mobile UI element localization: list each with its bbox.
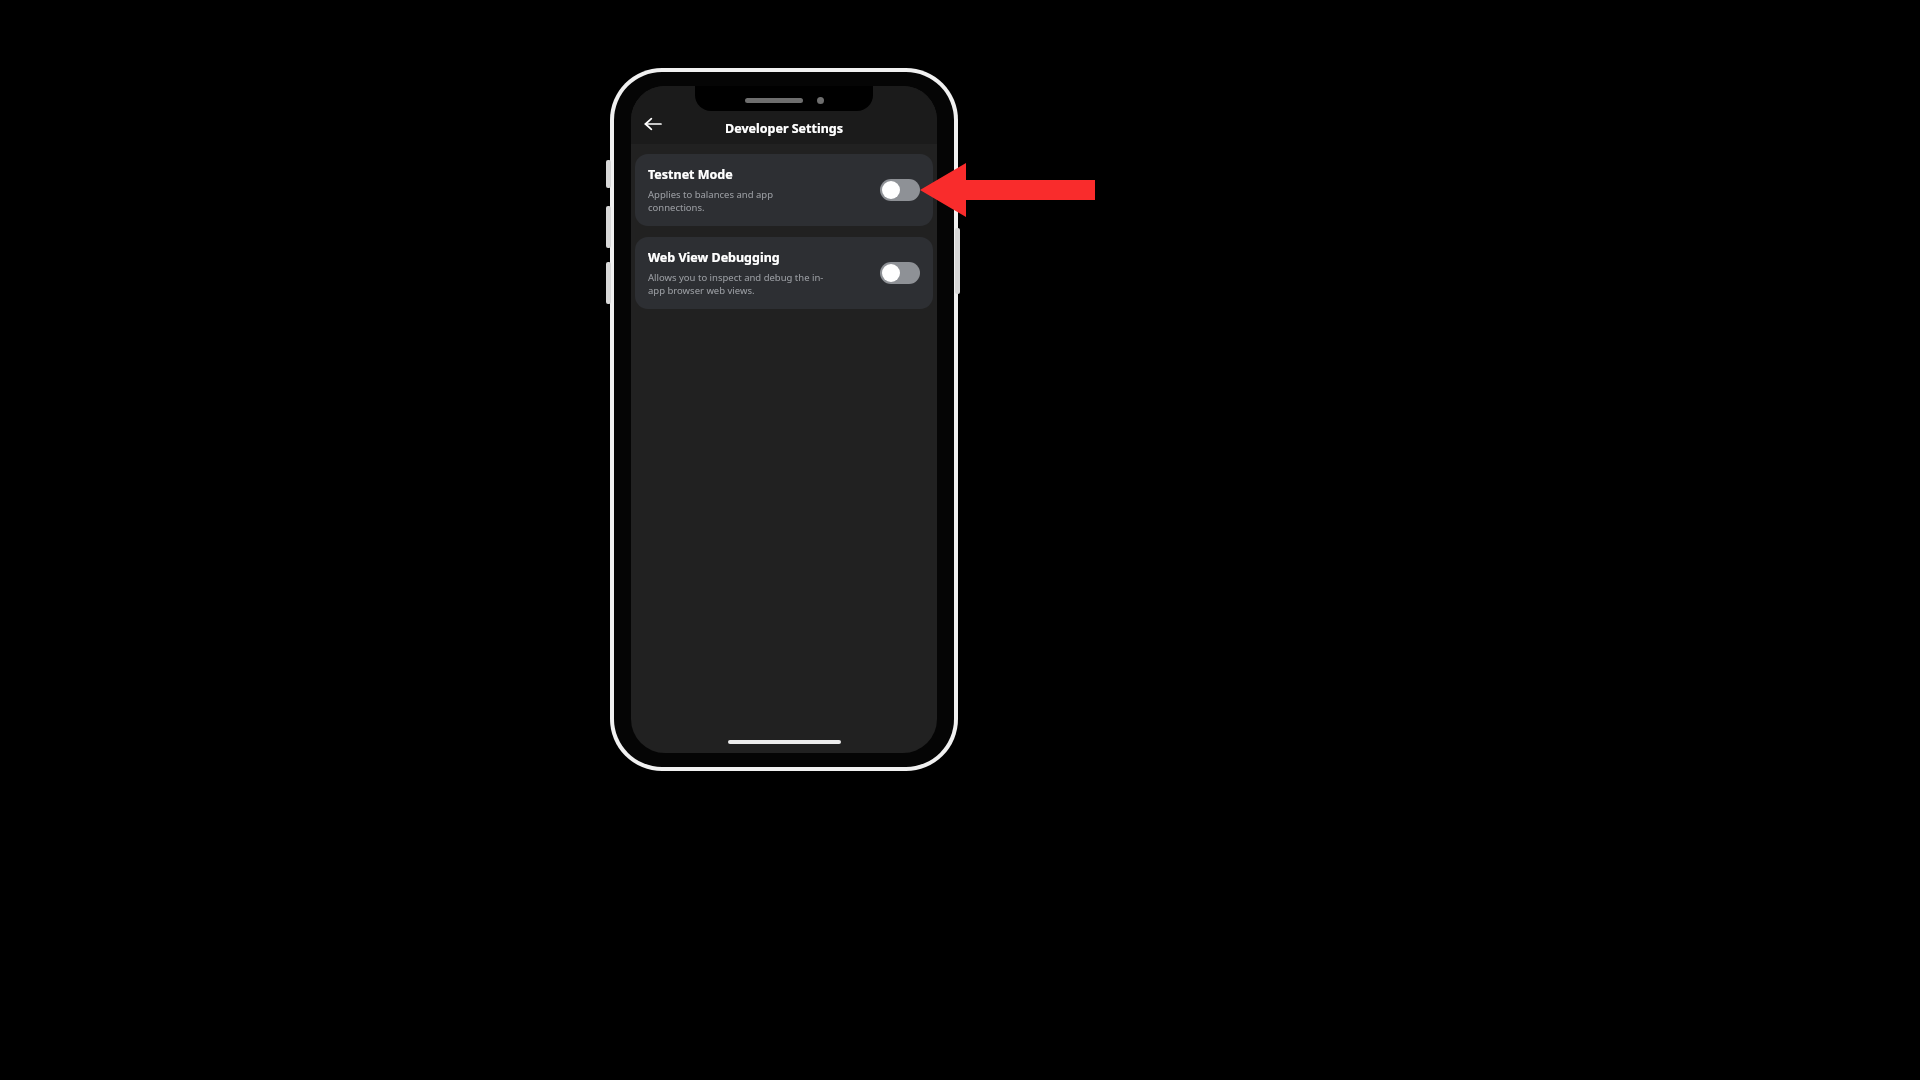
staticText: Web View Debugging xyxy=(648,249,780,266)
button[interactable]: Web View Debugging xyxy=(635,237,933,309)
button[interactable]: Toggle xyxy=(880,179,920,201)
button[interactable]: Toggle xyxy=(880,262,920,284)
staticText: Testnet Mode xyxy=(648,166,733,183)
staticText: Developer Settings xyxy=(725,120,843,137)
staticText: Allows you to inspect and debug the in- … xyxy=(648,271,824,297)
button[interactable]: Testnet Mode xyxy=(635,154,933,226)
button[interactable]: Back xyxy=(635,106,671,142)
staticText: Applies to balances and app connections. xyxy=(648,188,773,214)
